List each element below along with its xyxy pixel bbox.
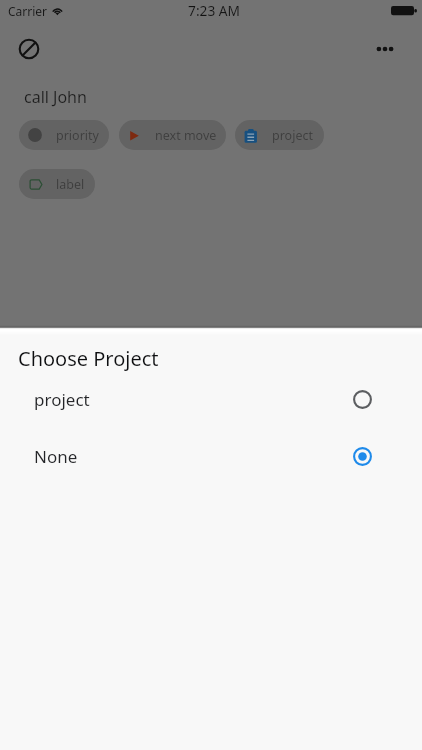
staticText: call John bbox=[24, 86, 87, 108]
button[interactable]: None bbox=[0, 428, 422, 485]
staticText: priority bbox=[56, 127, 99, 144]
staticText: 7:23 AM bbox=[188, 1, 240, 20]
staticText: Choose Project bbox=[18, 345, 159, 372]
staticText: next move bbox=[155, 127, 217, 144]
staticText: None bbox=[34, 445, 78, 468]
button[interactable]: project bbox=[0, 371, 422, 428]
button[interactable]: project bbox=[235, 120, 324, 150]
staticText: Carrier bbox=[8, 3, 48, 19]
staticText: label bbox=[56, 176, 85, 193]
button[interactable]: label bbox=[19, 169, 95, 199]
staticText: project bbox=[34, 388, 90, 411]
button[interactable]: priority bbox=[19, 120, 109, 150]
button[interactable]: Dismiss bbox=[0, 0, 422, 327]
button[interactable]: Cancel bbox=[13, 33, 45, 65]
staticText: project bbox=[272, 127, 313, 144]
button[interactable]: next move bbox=[119, 120, 226, 150]
button[interactable]: More options bbox=[369, 33, 401, 65]
